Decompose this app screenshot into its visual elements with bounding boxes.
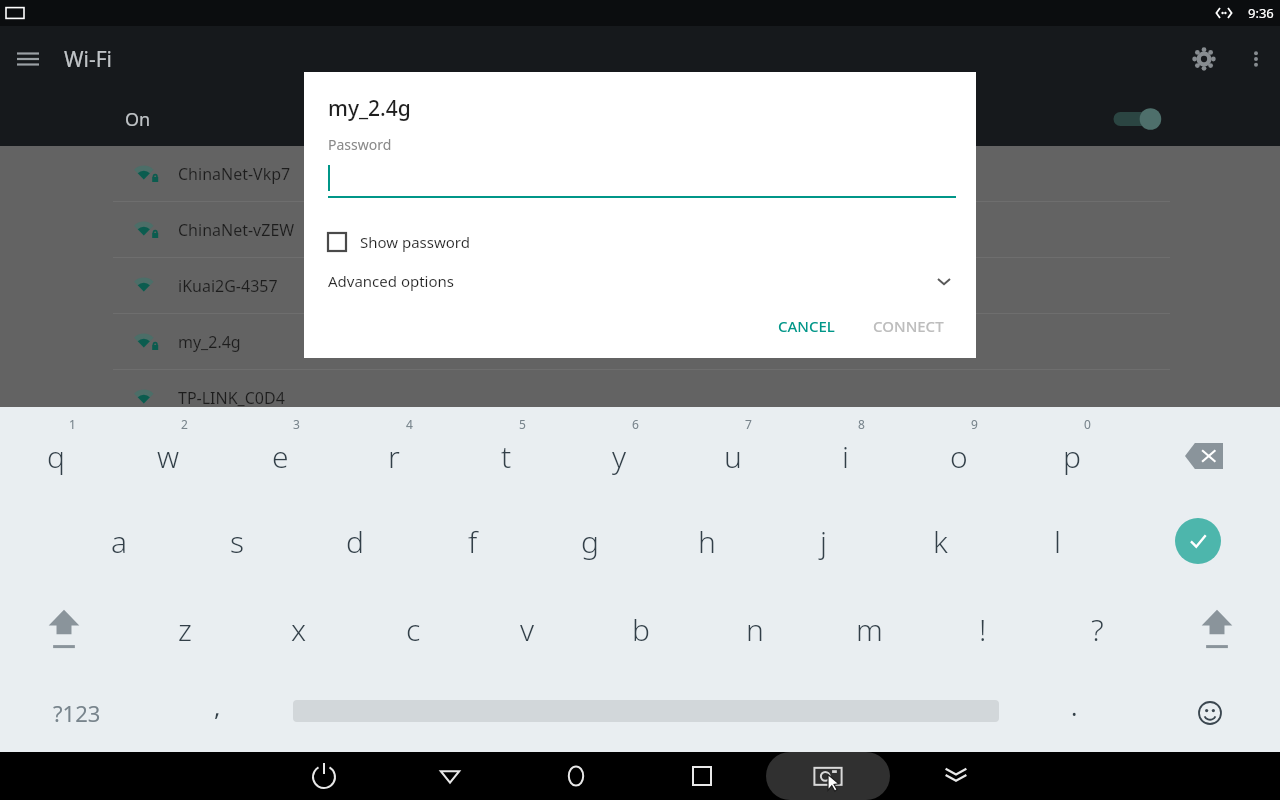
- button[interactable]: CONNECT: [859, 308, 958, 344]
- staticText: 5: [519, 416, 526, 432]
- button[interactable]: 4: [337, 407, 450, 497]
- staticText: d: [346, 521, 364, 562]
- button[interactable]: On: [0, 92, 1280, 146]
- staticText: k: [933, 521, 948, 562]
- button[interactable]: Shift: [1154, 585, 1280, 673]
- staticText: z: [178, 609, 192, 650]
- button[interactable]: x: [242, 585, 356, 673]
- staticText: 7: [745, 416, 752, 432]
- button[interactable]: f: [414, 497, 531, 585]
- staticText: 8: [858, 416, 865, 432]
- staticText: p: [1063, 436, 1081, 477]
- staticText: 0: [1084, 416, 1091, 432]
- staticText: .: [1071, 690, 1078, 723]
- button[interactable]: Space: [282, 673, 1010, 752]
- staticText: 9: [971, 416, 978, 432]
- button[interactable]: 8: [789, 407, 902, 497]
- staticText: w: [157, 436, 180, 477]
- button[interactable]: a: [60, 497, 178, 585]
- button[interactable]: Show password: [328, 225, 470, 259]
- staticText: Password: [328, 135, 392, 154]
- button[interactable]: h: [648, 497, 765, 585]
- button[interactable]: Screenshot: [766, 752, 890, 800]
- button[interactable]: d: [296, 497, 414, 585]
- button[interactable]: Hide keyboard: [932, 752, 980, 800]
- button[interactable]: Emoji: [1139, 673, 1280, 752]
- staticText: h: [698, 521, 716, 562]
- button[interactable]: 0: [1015, 407, 1128, 497]
- staticText: 1: [69, 416, 76, 432]
- button[interactable]: ChinaNet-vZEW: [0, 202, 1280, 257]
- staticText: Show password: [360, 232, 470, 252]
- staticText: CANCEL: [778, 316, 835, 336]
- staticText: i: [842, 436, 849, 477]
- staticText: q: [47, 436, 65, 477]
- button[interactable]: m: [812, 585, 926, 673]
- staticText: b: [632, 609, 650, 650]
- button[interactable]: Recents: [678, 752, 726, 800]
- staticText: y: [612, 436, 627, 477]
- staticText: TP-LINK_C0D4: [178, 387, 285, 409]
- button[interactable]: v: [470, 585, 584, 673]
- button[interactable]: Back: [426, 752, 474, 800]
- button[interactable]: g: [531, 497, 648, 585]
- button[interactable]: n: [698, 585, 812, 673]
- button[interactable]: 1: [0, 407, 112, 497]
- button[interactable]: Navigation drawer: [0, 31, 56, 87]
- button[interactable]: ?123: [0, 673, 153, 752]
- staticText: s: [230, 521, 245, 562]
- button[interactable]: 7: [676, 407, 789, 497]
- button[interactable]: s: [178, 497, 296, 585]
- staticText: my_2.4g: [178, 331, 241, 353]
- staticText: l: [1054, 521, 1061, 562]
- staticText: c: [406, 609, 421, 650]
- button[interactable]: [328, 162, 956, 198]
- button[interactable]: 3: [224, 407, 337, 497]
- staticText: CONNECT: [873, 316, 944, 336]
- staticText: my_2.4g: [328, 94, 411, 123]
- button[interactable]: Advanced options: [328, 263, 954, 299]
- staticText: 4: [406, 416, 413, 432]
- staticText: u: [724, 436, 742, 477]
- staticText: f: [468, 521, 478, 562]
- button[interactable]: 5: [450, 407, 563, 497]
- button[interactable]: k: [882, 497, 999, 585]
- button[interactable]: Power: [300, 752, 348, 800]
- staticText: ,: [214, 690, 221, 723]
- staticText: 2: [181, 416, 188, 432]
- button[interactable]: 6: [563, 407, 676, 497]
- staticText: m: [856, 609, 883, 650]
- button[interactable]: c: [356, 585, 470, 673]
- button[interactable]: iKuai2G-4357: [0, 258, 1280, 313]
- button[interactable]: Settings: [1176, 31, 1232, 87]
- button[interactable]: !: [926, 585, 1040, 673]
- button[interactable]: TP-LINK_C0D4: [0, 370, 1280, 425]
- button[interactable]: 9: [902, 407, 1015, 497]
- button[interactable]: ,: [153, 673, 282, 752]
- button[interactable]: my_2.4g: [0, 314, 1280, 369]
- staticText: ?123: [53, 698, 101, 728]
- staticText: Advanced options: [328, 271, 455, 291]
- staticText: 6: [632, 416, 639, 432]
- staticText: n: [746, 609, 764, 650]
- button[interactable]: z: [127, 585, 242, 673]
- button[interactable]: 2: [112, 407, 224, 497]
- button[interactable]: Backspace: [1128, 407, 1280, 497]
- staticText: r: [388, 436, 400, 477]
- button[interactable]: j: [765, 497, 882, 585]
- button[interactable]: ?: [1040, 585, 1154, 673]
- button[interactable]: More options: [1232, 35, 1280, 83]
- staticText: On: [125, 107, 151, 132]
- staticText: v: [520, 609, 535, 650]
- staticText: a: [111, 521, 128, 562]
- staticText: x: [291, 609, 307, 650]
- staticText: t: [501, 436, 512, 477]
- button[interactable]: b: [584, 585, 698, 673]
- button[interactable]: ChinaNet-Vkp7: [0, 146, 1280, 201]
- button[interactable]: Shift: [0, 585, 127, 673]
- button[interactable]: CANCEL: [764, 308, 849, 344]
- button[interactable]: Enter: [1116, 497, 1280, 585]
- button[interactable]: .: [1010, 673, 1139, 752]
- button[interactable]: l: [999, 497, 1116, 585]
- button[interactable]: Home: [552, 752, 600, 800]
